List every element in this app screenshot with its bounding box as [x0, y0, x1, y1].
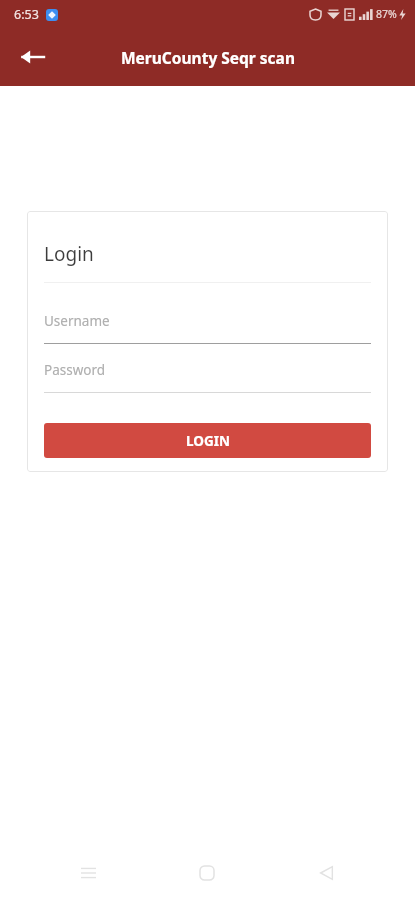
staticText: MeruCounty Seqr scan: [121, 47, 295, 68]
staticText: 6:53: [14, 6, 39, 23]
button[interactable]: Back: [10, 35, 54, 79]
staticText: Password: [44, 361, 106, 379]
staticText: Login: [44, 241, 94, 267]
button[interactable]: Recent apps: [65, 850, 111, 896]
button[interactable]: Password: [44, 359, 371, 393]
staticText: LOGIN: [186, 432, 230, 450]
button[interactable]: Home: [184, 850, 230, 896]
staticText: Username: [44, 312, 110, 330]
staticText: 87%: [376, 7, 397, 21]
button[interactable]: LOGIN: [44, 423, 371, 458]
button[interactable]: Back: [303, 850, 349, 896]
button[interactable]: Username: [44, 310, 371, 344]
